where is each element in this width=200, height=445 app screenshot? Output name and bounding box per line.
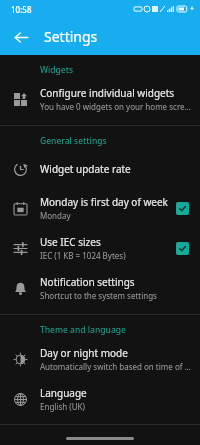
button[interactable]: Language: [0, 379, 200, 419]
staticText: English (UK): [40, 401, 85, 412]
button[interactable]: Use IEC sizes: [0, 228, 200, 268]
staticText: Notification settings: [40, 275, 135, 289]
button[interactable]: Toggle Use IEC sizes: [176, 242, 189, 255]
staticText: Monday: [40, 210, 71, 221]
button[interactable]: Configure individual widgets: [0, 79, 200, 119]
staticText: Automatically switch based on time of da…: [40, 361, 192, 372]
button[interactable]: Monday is first day of week: [0, 188, 200, 228]
staticText: Widgets: [40, 64, 74, 76]
staticText: Theme and language: [40, 324, 126, 336]
staticText: You have 0 widgets on your home screen.: [40, 101, 192, 112]
button[interactable]: Toggle Monday is first day of week: [176, 202, 189, 215]
staticText: 10:58: [11, 4, 32, 15]
staticText: General settings: [40, 135, 107, 147]
staticText: +: [190, 4, 195, 14]
staticText: Language: [40, 386, 87, 400]
staticText: Monday is first day of week: [40, 195, 168, 209]
button[interactable]: Widget update rate: [0, 150, 200, 188]
staticText: Use IEC sizes: [40, 235, 101, 249]
button[interactable]: Back: [7, 23, 35, 51]
staticText: Shortcut to the system settings: [40, 290, 157, 301]
staticText: Settings: [44, 27, 98, 46]
staticText: IEC (1 KB = 1024 Bytes): [40, 250, 126, 261]
button[interactable]: Notification settings: [0, 268, 200, 308]
staticText: Widget update rate: [40, 162, 131, 176]
staticText: Configure individual widgets: [40, 86, 175, 100]
staticText: Day or night mode: [40, 346, 128, 360]
button[interactable]: Day or night mode: [0, 339, 200, 379]
